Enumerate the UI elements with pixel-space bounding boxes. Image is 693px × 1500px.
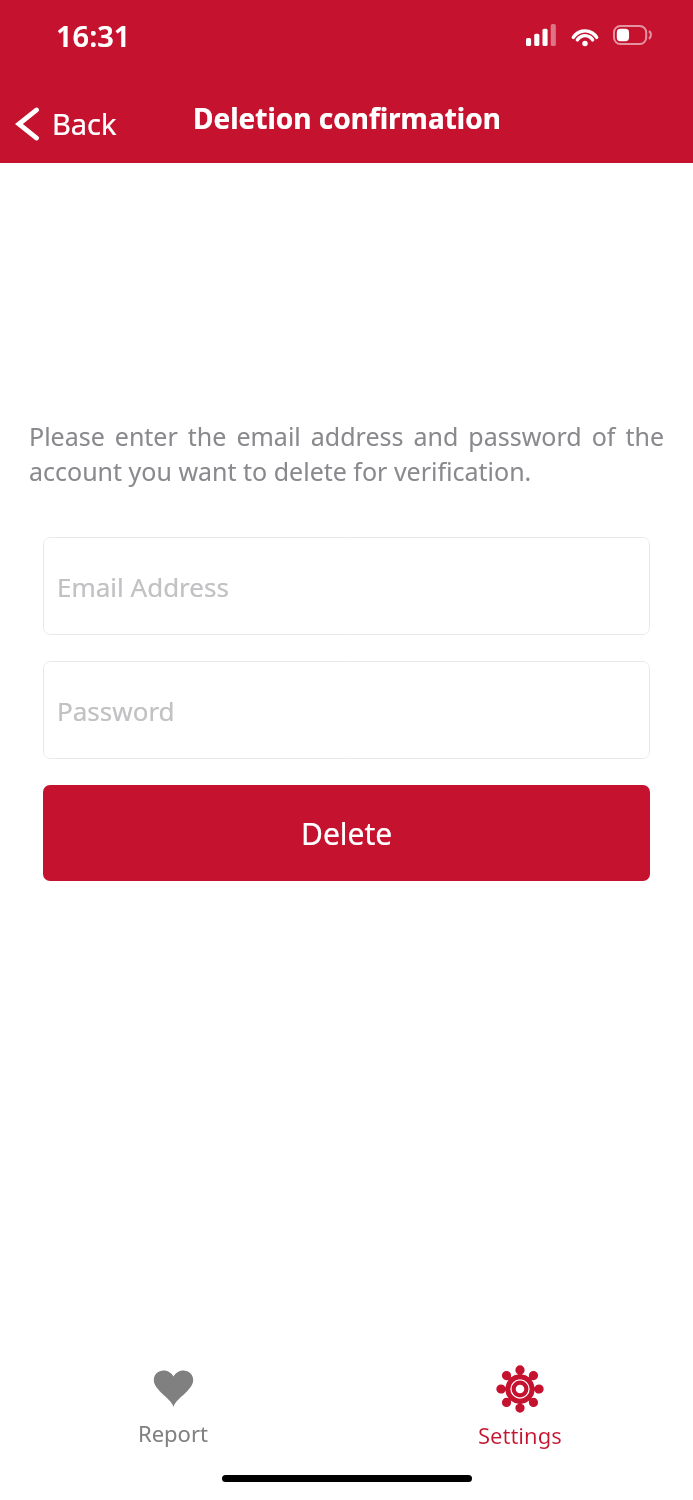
staticText: Deletion confirmation (193, 99, 501, 137)
staticText: Please enter the email address and passw… (29, 419, 664, 489)
button[interactable]: Settings (346, 1361, 693, 1456)
other: Settings (498, 1367, 542, 1411)
staticText: Email Address (57, 569, 229, 604)
button[interactable]: Report (0, 1362, 346, 1454)
button[interactable]: Email Address (43, 537, 650, 635)
staticText: 16:31 (56, 16, 131, 55)
staticText: Settings (478, 1420, 562, 1450)
staticText: Password (57, 693, 175, 728)
other: Report (153, 1368, 194, 1409)
button[interactable]: Back (0, 98, 133, 149)
staticText: Back (52, 104, 117, 143)
staticText: Report (138, 1418, 208, 1448)
button[interactable]: Delete (43, 785, 650, 881)
button[interactable]: Password (43, 661, 650, 759)
staticText: Delete (301, 813, 393, 854)
